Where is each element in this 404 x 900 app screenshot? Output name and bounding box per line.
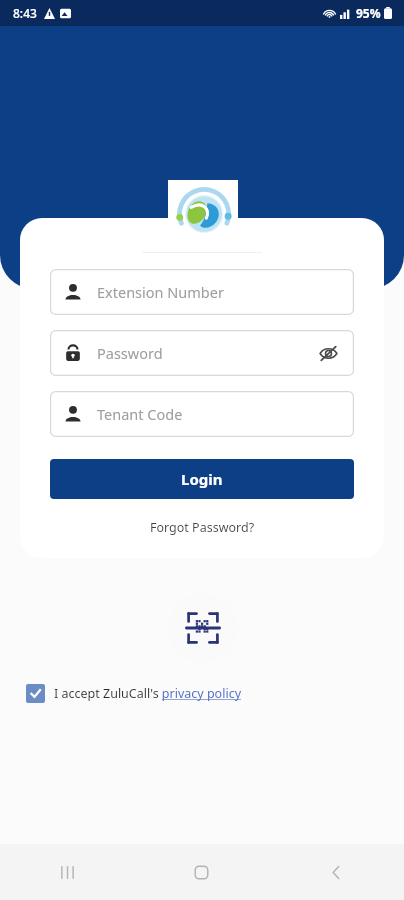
button[interactable]: Tenant Code (50, 391, 354, 437)
button[interactable]: Forgot Password? (142, 516, 263, 539)
staticText: Tenant Code (97, 404, 183, 424)
button[interactable]: Scan QR code (168, 593, 238, 663)
staticText: Forgot Password? (150, 519, 255, 536)
button[interactable]: Login (50, 459, 354, 499)
staticText: Login (181, 469, 223, 489)
button[interactable]: Recent apps (0, 844, 134, 900)
button[interactable]: Show password (316, 341, 340, 365)
staticText: 95% (356, 5, 381, 21)
button[interactable]: Home (134, 844, 269, 900)
staticText: I accept ZuluCall's privacy policy (54, 685, 242, 702)
staticText: 8:43 (13, 5, 37, 21)
button[interactable]: Extension Number (50, 269, 354, 315)
staticText: Extension Number (97, 282, 224, 302)
staticText: Password (97, 343, 163, 363)
button[interactable]: Password (50, 330, 354, 376)
button[interactable]: Back (269, 844, 404, 900)
button[interactable]: I accept ZuluCall's privacy policy (22, 680, 246, 707)
